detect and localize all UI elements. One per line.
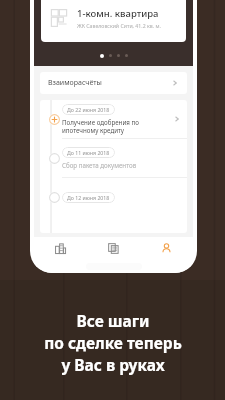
button[interactable]: До 22 июня 2018 <box>40 100 187 138</box>
staticText: ЖК Савеловский Сити, 41.2 кв. м. <box>77 22 161 29</box>
button[interactable]: До 12 июня 2018 <box>40 178 187 216</box>
button[interactable]: 1-комн. квартира <box>41 0 186 42</box>
staticText: До 12 июня 2018 <box>67 194 110 201</box>
button[interactable]: Взаиморасчёты <box>40 72 187 94</box>
button[interactable]: Objects <box>34 237 87 259</box>
staticText: Взаиморасчёты <box>48 78 102 88</box>
staticText: До 11 июня 2018 <box>67 149 110 156</box>
staticText: Получение одобрения по ипотечному кредит… <box>62 118 139 134</box>
staticText: До 22 июня 2018 <box>67 106 110 113</box>
button[interactable]: Profile <box>140 237 193 259</box>
staticText: у Вас в руках <box>61 354 165 375</box>
staticText: 1-комн. квартира <box>77 7 159 20</box>
staticText: Все шаги <box>76 310 150 331</box>
button[interactable]: До 11 июня 2018 <box>40 139 187 177</box>
staticText: по сделке теперь <box>44 332 182 353</box>
staticText: Сбор пакета документов <box>62 161 137 169</box>
button[interactable]: Documents <box>87 237 140 259</box>
